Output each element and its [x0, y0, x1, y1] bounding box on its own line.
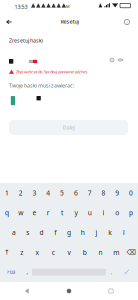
staticText: 5 [60, 188, 64, 197]
staticText: t [61, 208, 63, 217]
staticText: Dalej [62, 124, 74, 131]
staticText: a [12, 228, 16, 237]
button[interactable]: m [108, 242, 124, 262]
staticText: n [98, 248, 102, 257]
staticText: j [96, 228, 98, 237]
button[interactable]: c [45, 242, 61, 262]
button[interactable]: 2 [14, 183, 28, 203]
button[interactable]: 4 [41, 183, 55, 203]
button[interactable]: a [7, 223, 21, 242]
button[interactable]: 5 [55, 183, 69, 203]
button[interactable]: x [30, 242, 45, 262]
button[interactable]: e [28, 203, 41, 223]
staticText: u [88, 208, 92, 217]
button[interactable]: ?123 [0, 263, 22, 281]
staticText: ⌫ [126, 248, 135, 256]
staticText: 7 [88, 188, 92, 197]
button[interactable]: f [48, 223, 62, 242]
staticText: , [26, 269, 27, 276]
staticText: 13:53 [14, 3, 27, 10]
staticText: c [52, 248, 55, 257]
button[interactable]: Backspace [124, 243, 138, 262]
button[interactable]: Back [12, 282, 42, 300]
staticText: f [54, 228, 56, 237]
button[interactable]: u [83, 203, 97, 223]
button[interactable]: h [76, 223, 90, 242]
staticText: e [32, 208, 36, 217]
staticText: b [83, 248, 87, 257]
button[interactable]: b [77, 242, 93, 262]
button[interactable]: Clear text [108, 56, 116, 64]
staticText: w [18, 208, 23, 217]
button[interactable]: g [62, 223, 76, 242]
staticText: 2 [19, 188, 23, 197]
staticText: k [108, 228, 112, 237]
button[interactable]: 8 [97, 183, 110, 203]
staticText: Resetuj [60, 18, 78, 25]
staticText: l [123, 228, 125, 237]
button[interactable]: r [41, 203, 55, 223]
staticText: 0 [129, 188, 133, 197]
button[interactable]: q [0, 203, 14, 223]
staticText: 6 [74, 188, 78, 197]
staticText: 9 [115, 188, 119, 197]
staticText: y [74, 208, 77, 217]
staticText: q [5, 208, 9, 217]
button[interactable]: v [61, 242, 77, 262]
button[interactable]: w [14, 203, 28, 223]
button[interactable]: d [35, 223, 48, 242]
button[interactable]: s [21, 223, 35, 242]
staticText: d [39, 228, 43, 237]
staticText: 1 [5, 188, 9, 197]
button[interactable]: z [14, 242, 30, 262]
staticText: h [81, 228, 85, 237]
button[interactable]: Home [54, 282, 84, 300]
staticText: v [67, 248, 70, 257]
button[interactable]: 0 [124, 183, 138, 203]
staticText: o [115, 208, 119, 217]
button[interactable]: i [97, 203, 110, 223]
button[interactable]: Done [116, 263, 138, 281]
staticText: m [113, 248, 119, 257]
staticText: r [47, 208, 50, 217]
button[interactable]: Recents [96, 282, 126, 300]
staticText: Zbyt wiele prób. Spróbuj ponownie późnie… [16, 69, 88, 74]
button[interactable]: 9 [110, 183, 124, 203]
staticText: p [129, 208, 133, 217]
button[interactable]: j [90, 223, 103, 242]
button[interactable]: o [110, 203, 124, 223]
button[interactable]: k [103, 223, 117, 242]
staticText: 4 [46, 188, 50, 197]
button[interactable]: Back [1, 15, 17, 29]
staticText: s [26, 228, 29, 237]
staticText: i [102, 208, 104, 217]
button[interactable]: 1 [0, 183, 14, 203]
button[interactable]: , [22, 263, 32, 281]
staticText: . [110, 269, 111, 276]
staticText: M [66, 4, 70, 9]
staticText: Zresetuj hasło [9, 37, 43, 44]
staticText: 8 [101, 188, 105, 197]
button[interactable]: . [106, 263, 116, 281]
staticText: Twoje hasło musi zawierać: [9, 82, 74, 89]
button[interactable]: y [69, 203, 83, 223]
button[interactable]: 7 [83, 183, 97, 203]
button[interactable]: l [117, 223, 131, 242]
button[interactable]: t [55, 203, 69, 223]
staticText: 3 [32, 188, 36, 197]
staticText: z [20, 248, 23, 257]
staticText: x [36, 248, 40, 257]
button[interactable]: Dalej [9, 120, 128, 135]
button[interactable]: p [124, 203, 138, 223]
button[interactable]: n [93, 242, 108, 262]
staticText: ?123 [7, 269, 15, 275]
button[interactable]: 3 [28, 183, 41, 203]
button[interactable]: Help [120, 17, 134, 27]
button[interactable]: Show password [116, 56, 125, 64]
button[interactable]: 6 [69, 183, 83, 203]
staticText: ↑ [4, 248, 10, 256]
staticText: g [67, 228, 71, 237]
button[interactable]: Shift [0, 243, 14, 262]
staticText: ✓ [123, 268, 130, 277]
